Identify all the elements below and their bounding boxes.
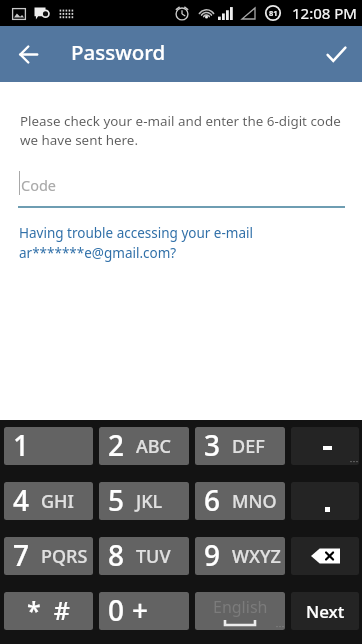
button[interactable]: Backspace	[291, 537, 359, 575]
staticText: 12:08 PM	[292, 3, 357, 23]
staticText: +	[132, 592, 149, 629]
staticText: 1	[13, 427, 30, 464]
button[interactable]: Confirm	[310, 26, 362, 82]
button[interactable]: 0	[99, 592, 189, 630]
staticText: TUV	[136, 544, 171, 569]
staticText: 9	[204, 537, 221, 574]
staticText: PQRS	[41, 544, 88, 569]
staticText: 3	[204, 427, 221, 464]
staticText: 4	[13, 482, 30, 519]
button[interactable]: 3	[195, 427, 285, 465]
staticText: GHI	[41, 489, 74, 514]
staticText: 8	[108, 537, 125, 574]
button[interactable]: Dash	[291, 427, 359, 465]
staticText: 6	[204, 482, 221, 519]
staticText: MNO	[232, 489, 277, 514]
staticText: 0	[108, 592, 125, 629]
button[interactable]: 4	[4, 482, 93, 520]
staticText: English	[213, 596, 268, 618]
staticText: JKL	[136, 489, 163, 514]
button[interactable]: Space	[195, 592, 285, 630]
staticText: * #	[27, 593, 70, 627]
staticText: ABC	[136, 434, 171, 459]
staticText: Please check your e-mail and enter the 6…	[20, 112, 341, 149]
staticText: 7	[13, 537, 30, 574]
button[interactable]: 1	[4, 427, 93, 465]
staticText: Next	[306, 600, 345, 623]
button[interactable]: 6	[195, 482, 285, 520]
button[interactable]: 2	[99, 427, 189, 465]
button[interactable]: Navigate up	[0, 26, 56, 82]
button[interactable]: 9	[195, 537, 285, 575]
button[interactable]: 8	[99, 537, 189, 575]
button[interactable]: Next	[291, 592, 359, 630]
staticText: Having trouble accessing your e-mail ar*…	[19, 224, 253, 262]
button[interactable]: 5	[99, 482, 189, 520]
staticText: 2	[108, 427, 125, 464]
staticText: Code	[21, 175, 57, 195]
button[interactable]: Period	[291, 482, 359, 520]
button[interactable]: * #	[4, 592, 93, 630]
staticText: Password	[71, 38, 166, 66]
staticText: 5	[108, 482, 125, 519]
staticText: 81	[269, 8, 278, 18]
staticText: WXYZ	[232, 544, 281, 569]
staticText: DEF	[232, 434, 265, 459]
button[interactable]: 7	[4, 537, 93, 575]
